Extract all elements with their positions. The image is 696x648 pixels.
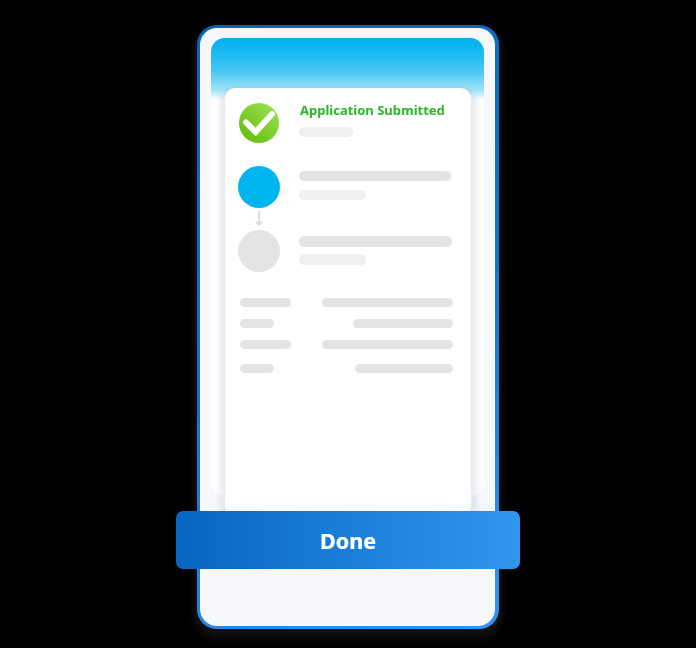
staticText: Application Submitted <box>300 101 445 119</box>
button[interactable]: Completed <box>233 98 463 146</box>
other: Upcoming step <box>238 230 280 272</box>
button[interactable]: In progress <box>233 162 463 212</box>
button[interactable] <box>233 292 463 312</box>
button[interactable]: Upcoming step <box>233 226 463 276</box>
button[interactable] <box>233 313 463 333</box>
staticText: Done <box>320 526 376 555</box>
other: In progress <box>238 166 280 208</box>
other: Completed <box>239 103 279 143</box>
button[interactable] <box>233 358 463 378</box>
button[interactable]: Done <box>176 511 520 569</box>
button[interactable] <box>233 333 463 353</box>
